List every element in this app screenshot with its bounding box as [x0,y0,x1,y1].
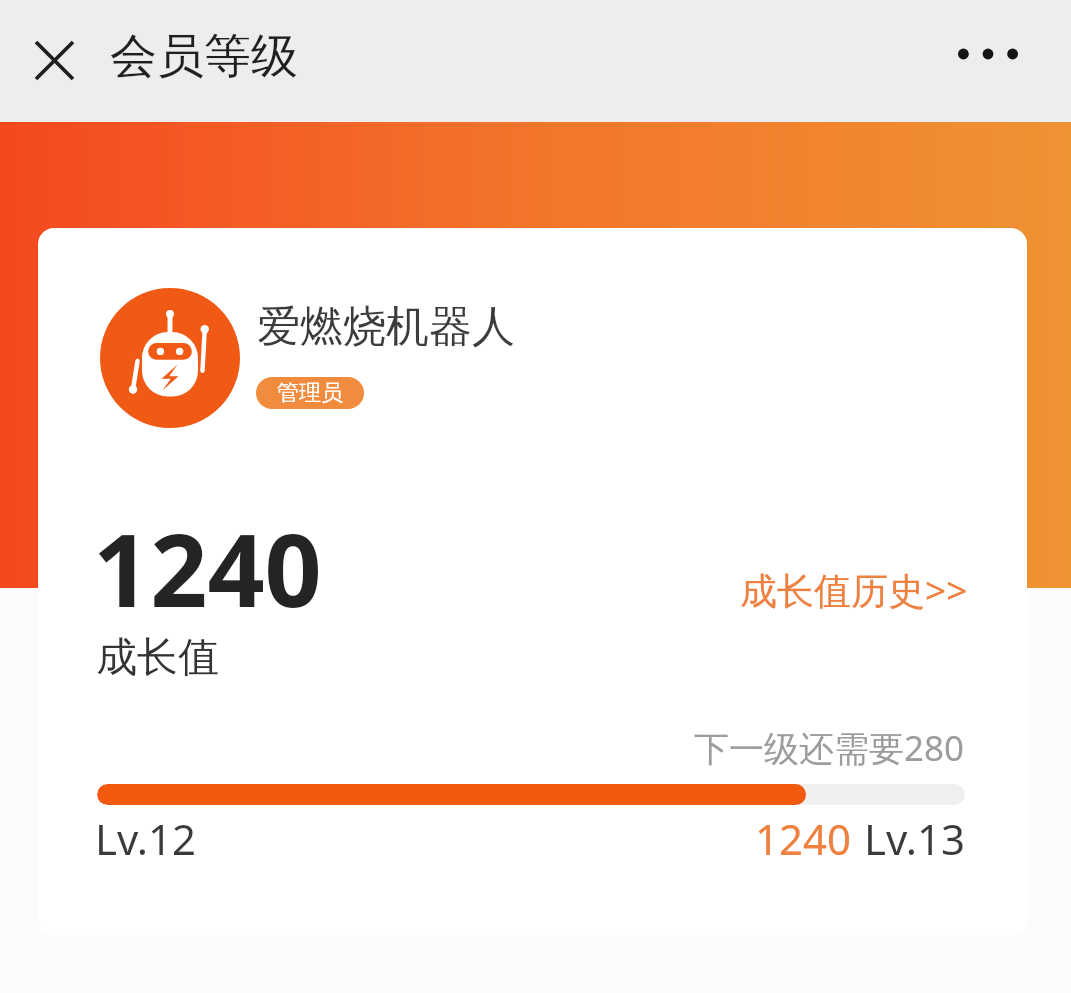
staticText: 下一级还需要280 [694,724,965,772]
staticText: 会员等级 [110,27,298,86]
staticText: 成长值历史>> [740,564,968,615]
staticText: 爱燃烧机器人 [257,300,515,354]
staticText: 1240 [755,810,852,867]
staticText: 1240 [93,500,322,636]
button[interactable]: Close [16,22,92,98]
staticText: 管理员 [277,379,343,407]
button[interactable]: Profile avatar [100,288,240,428]
button[interactable]: 成长值历史>> [728,556,968,622]
staticText: Lv.12 [95,810,196,867]
button[interactable]: 管理员 [256,377,364,409]
button[interactable]: More options [936,17,1040,91]
staticText: Lv.13 [864,810,965,867]
staticText: 成长值 [96,632,219,684]
